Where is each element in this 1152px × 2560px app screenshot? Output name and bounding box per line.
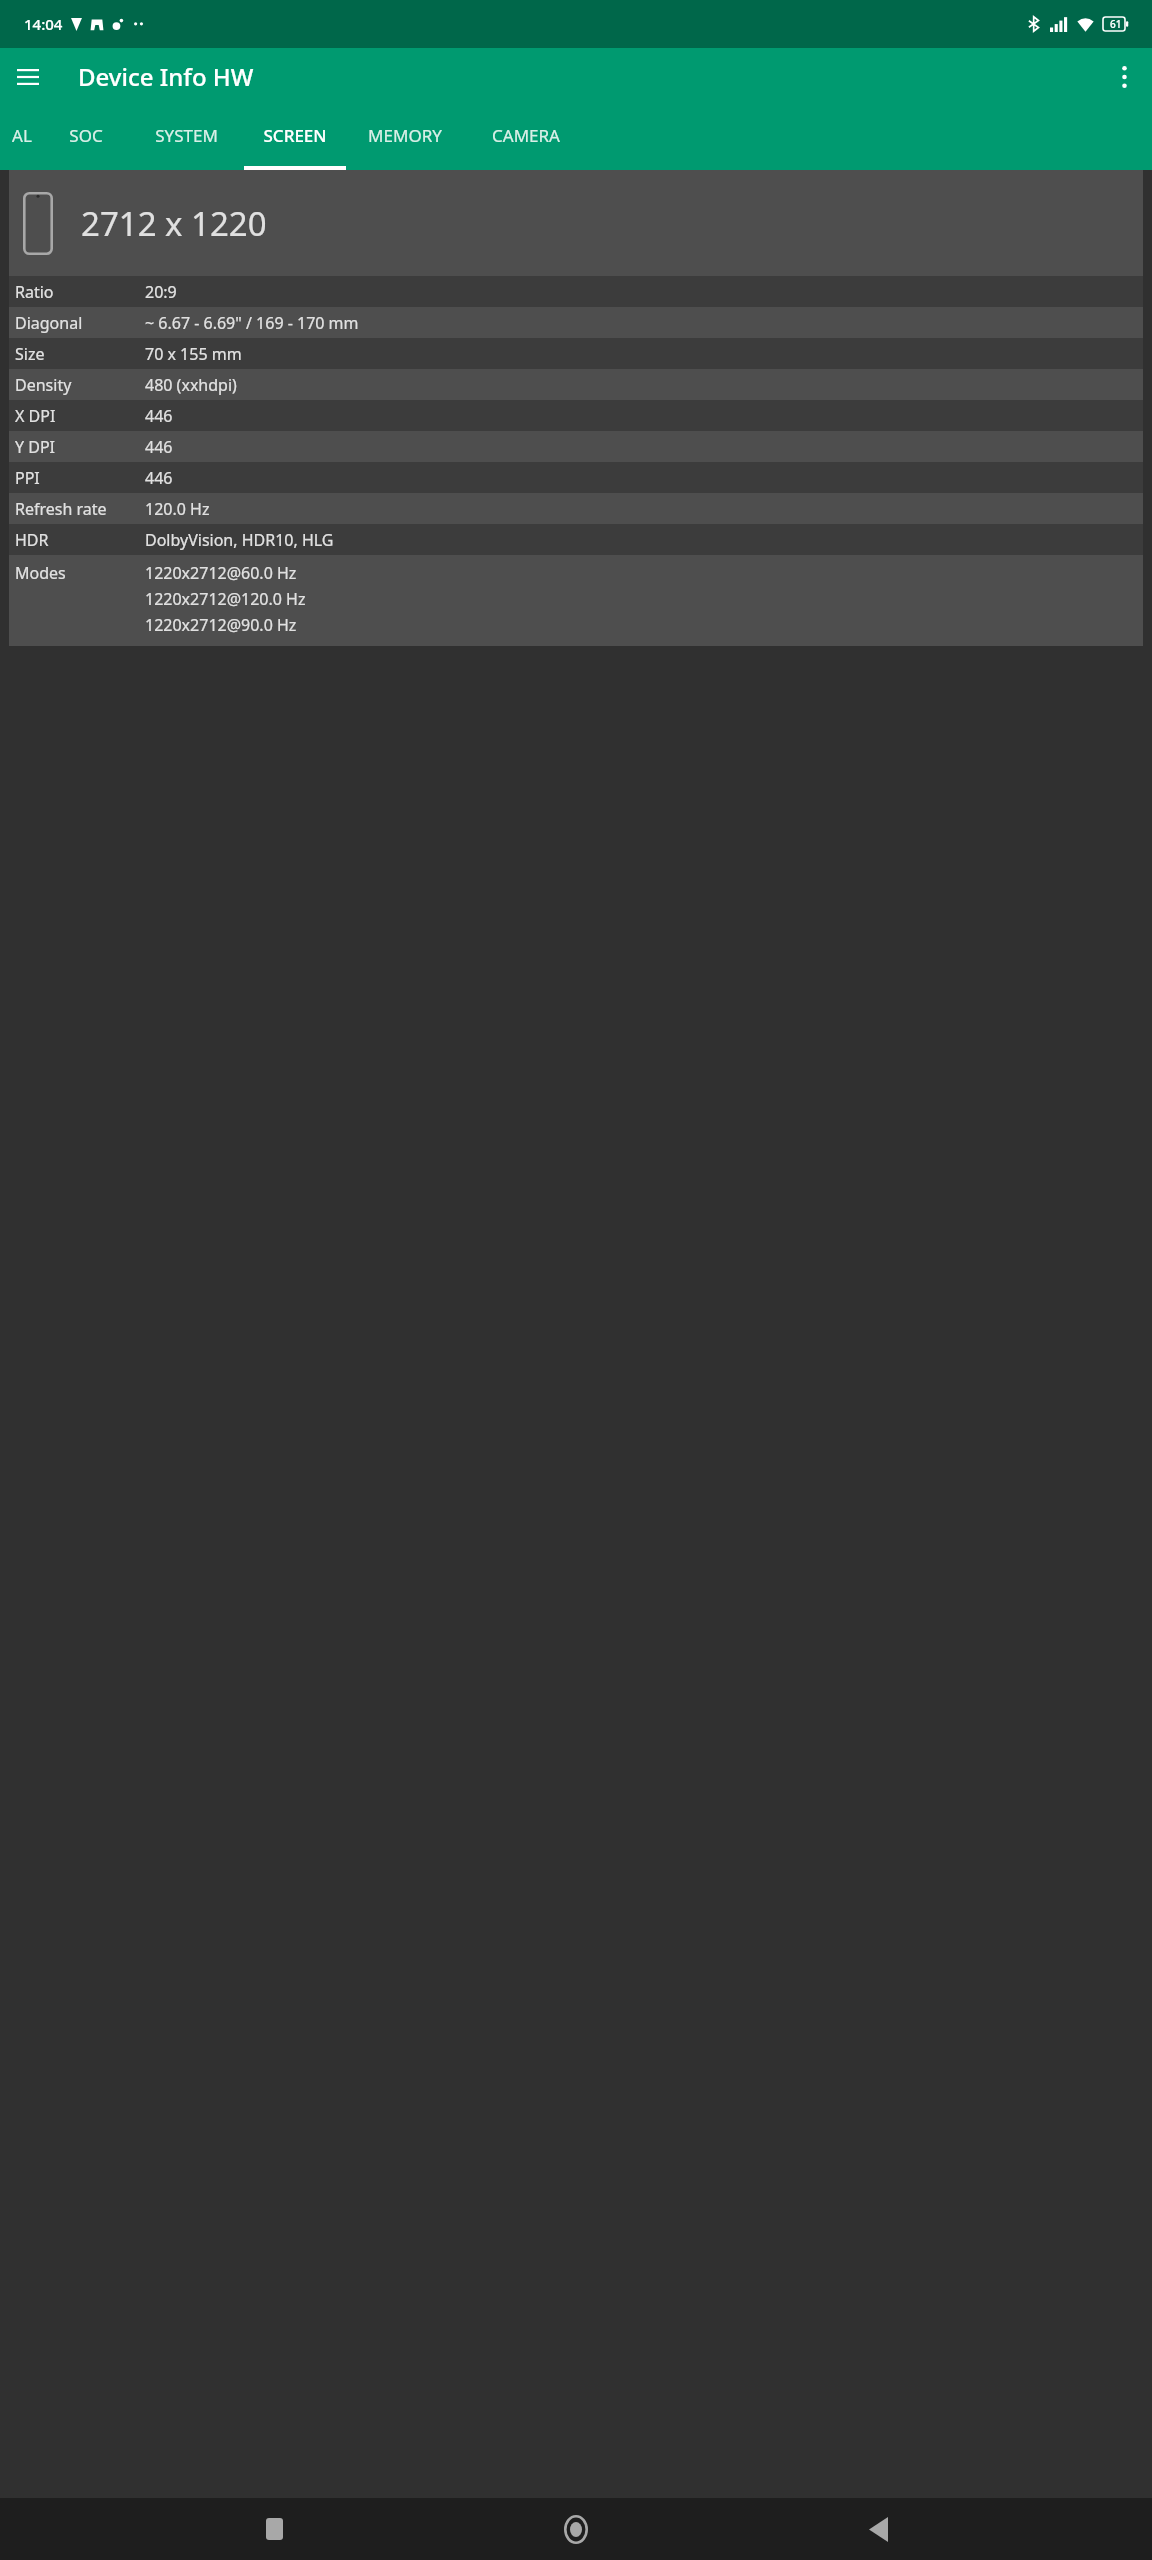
staticText: Y DPI [15, 436, 56, 458]
button[interactable]: Open navigation drawer [0, 49, 56, 105]
staticText: Diagonal [15, 312, 83, 334]
staticText: Device Info HW [78, 60, 254, 93]
staticText: PPI [15, 467, 40, 489]
staticText: 70 x 155 mm [145, 343, 242, 365]
button[interactable]: More options [1096, 49, 1152, 105]
button[interactable]: SCREEN [244, 105, 346, 170]
staticText: 1220x2712@90.0 Hz [145, 614, 297, 636]
staticText: 446 [145, 467, 173, 489]
button[interactable]: Recent apps [246, 2501, 302, 2557]
button[interactable]: 2712 x 1220 [9, 170, 1143, 276]
staticText: Refresh rate [15, 498, 107, 520]
staticText: 20:9 [145, 281, 177, 303]
button[interactable]: SOC [44, 105, 128, 170]
staticText: X DPI [15, 405, 56, 427]
staticText: Density [15, 374, 72, 396]
button[interactable]: HDR [9, 524, 1143, 555]
button[interactable]: AL [0, 105, 44, 170]
button[interactable]: Modes [9, 555, 1143, 646]
staticText: SOC [69, 124, 103, 147]
button[interactable]: PPI [9, 462, 1143, 493]
button[interactable]: Y DPI [9, 431, 1143, 462]
staticText: 480 (xxhdpi) [145, 374, 237, 396]
staticText: Size [15, 343, 45, 365]
button[interactable]: Refresh rate [9, 493, 1143, 524]
staticText: SCREEN [263, 124, 327, 147]
button[interactable]: Density [9, 369, 1143, 400]
staticText: 14:04 [24, 14, 63, 34]
button[interactable]: Home [548, 2501, 604, 2557]
staticText: 61 [1110, 17, 1122, 31]
button[interactable]: Ratio [9, 276, 1143, 307]
staticText: 1220x2712@60.0 Hz [145, 562, 297, 584]
staticText: Ratio [15, 281, 54, 303]
button[interactable]: SYSTEM [128, 105, 244, 170]
staticText: 120.0 Hz [145, 498, 210, 520]
button[interactable]: Diagonal [9, 307, 1143, 338]
staticText: 1220x2712@120.0 Hz [145, 588, 306, 610]
staticText: Modes [15, 562, 66, 584]
staticText: DolbyVision, HDR10, HLG [145, 529, 334, 551]
button[interactable]: X DPI [9, 400, 1143, 431]
staticText: ~ 6.67 - 6.69" / 169 - 170 mm [145, 312, 359, 334]
staticText: SYSTEM [155, 124, 218, 147]
button[interactable]: Back [850, 2501, 906, 2557]
button[interactable]: MEMORY [346, 105, 464, 170]
staticText: MEMORY [368, 124, 442, 147]
staticText: AL [12, 124, 32, 147]
staticText: 446 [145, 405, 173, 427]
button[interactable]: CAMERA [464, 105, 588, 170]
staticText: HDR [15, 529, 49, 551]
staticText: 2712 x 1220 [81, 201, 267, 246]
button[interactable]: Size [9, 338, 1143, 369]
staticText: CAMERA [492, 124, 560, 147]
staticText: 446 [145, 436, 173, 458]
